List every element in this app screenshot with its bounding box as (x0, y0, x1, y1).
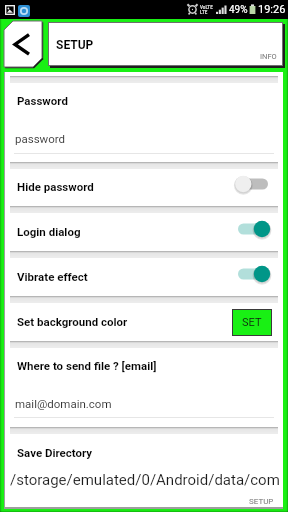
staticText: Login dialog (17, 225, 81, 238)
staticText: SET (242, 316, 262, 329)
staticText: SETUP (249, 497, 274, 506)
staticText: /storage/emulated/0/Android/data/com (10, 471, 280, 489)
staticText: Vibrate effect (17, 270, 88, 283)
button[interactable]: Vibrate effect (0, 259, 288, 296)
button[interactable]: SET (232, 309, 272, 336)
button[interactable]: Back (4, 21, 43, 68)
staticText: INFO (260, 52, 277, 61)
staticText: 19:26 (258, 3, 286, 16)
staticText: Set background color (17, 315, 128, 328)
staticText: Where to send file ? [email] (17, 359, 157, 372)
staticText: Save Directory (17, 446, 93, 459)
button[interactable]: Hide password (0, 169, 288, 206)
button[interactable]: SETUP (48, 22, 283, 66)
button[interactable]: Password (0, 83, 288, 162)
staticText: Password (17, 94, 68, 107)
staticText: 49% (229, 4, 248, 16)
staticText: SETUP (56, 38, 94, 52)
staticText: password (15, 132, 66, 145)
button[interactable]: Where to send file ? [email] (0, 348, 288, 427)
button[interactable]: Login dialog (0, 214, 288, 251)
staticText: LTE (200, 10, 208, 15)
staticText: Hide password (17, 180, 94, 193)
staticText: VoLTE (200, 5, 213, 10)
staticText: mail@domain.com (15, 397, 112, 410)
button[interactable]: Save Directory (0, 434, 288, 508)
